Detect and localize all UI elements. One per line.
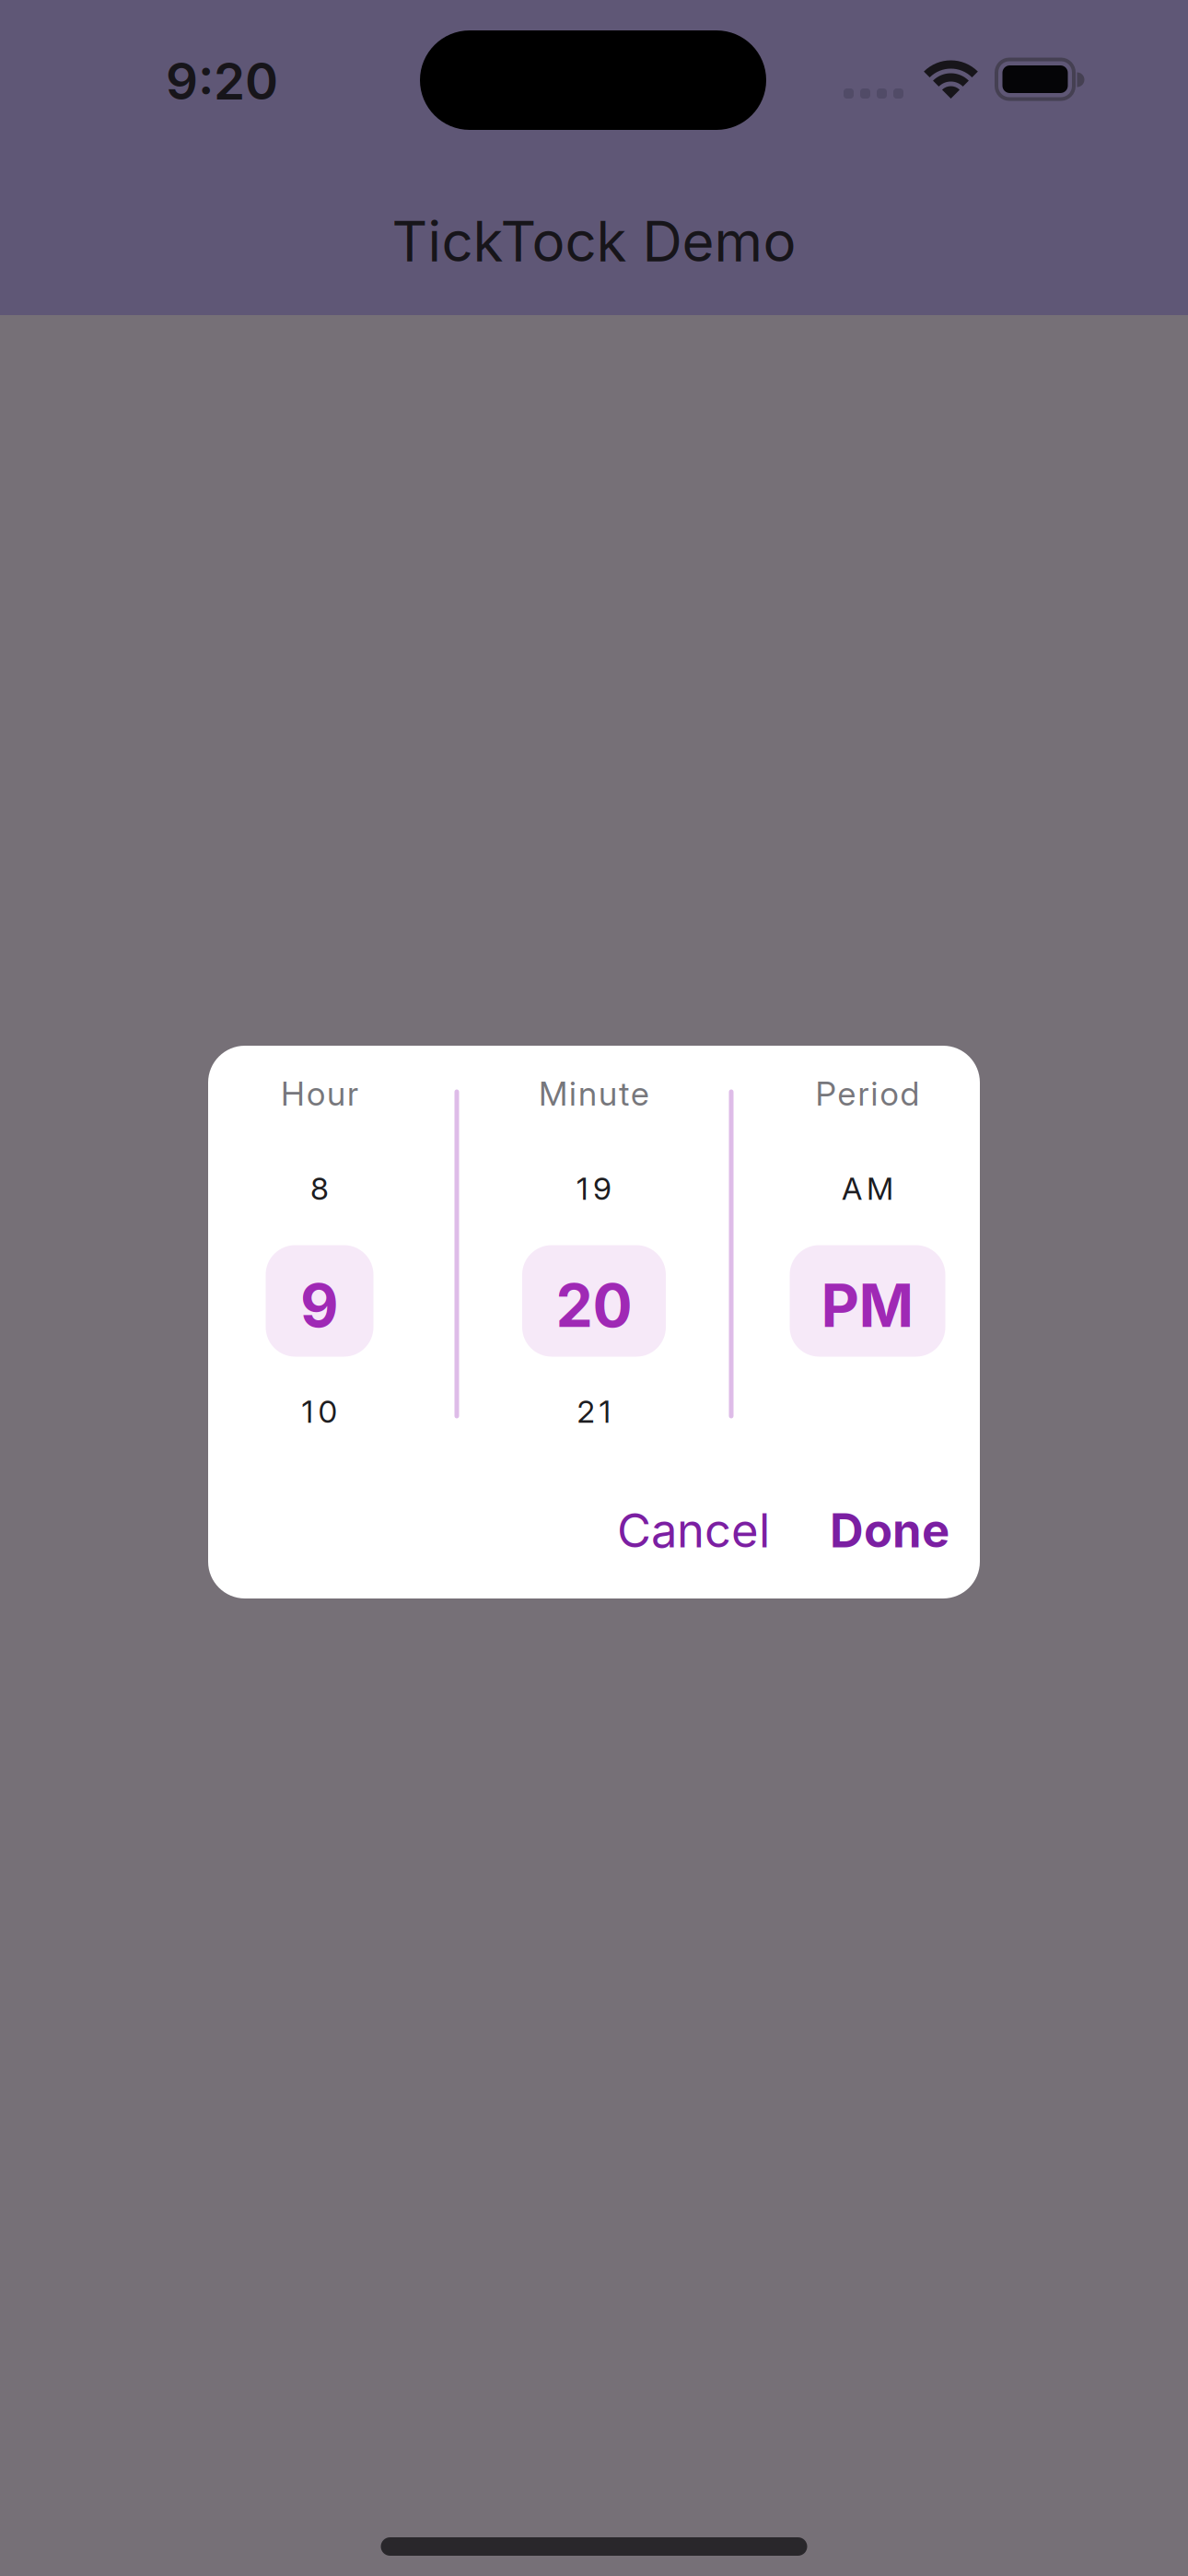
button[interactable]: Done	[770, 1484, 1009, 1576]
staticText: TickTock Demo	[392, 209, 796, 274]
button[interactable]: 20	[522, 1245, 666, 1357]
staticText: PM	[821, 1271, 914, 1340]
button[interactable]: 1 0	[238, 1375, 401, 1448]
staticText: 20	[556, 1271, 632, 1340]
button[interactable]: A M	[762, 1152, 973, 1225]
button[interactable]: 1 9	[495, 1152, 693, 1225]
staticText: 9:20	[166, 51, 278, 111]
staticText: A M	[842, 1170, 893, 1207]
button[interactable]: 8	[238, 1152, 401, 1225]
staticText: Done	[830, 1503, 949, 1558]
staticText: 2 1	[577, 1393, 611, 1430]
button[interactable]: PM	[790, 1245, 945, 1357]
button[interactable]: 2 1	[495, 1375, 693, 1448]
button[interactable]: Cancel	[546, 1484, 841, 1576]
button[interactable]: 9	[266, 1245, 373, 1357]
staticText: 8	[310, 1170, 329, 1207]
staticText: H o u r	[281, 1074, 358, 1113]
staticText: M i n u t e	[539, 1074, 649, 1113]
staticText: Cancel	[617, 1503, 770, 1558]
staticText: 9	[300, 1271, 339, 1340]
staticText: 1 9	[577, 1170, 611, 1207]
staticText: 1 0	[302, 1393, 338, 1430]
staticText: P e r i o d	[815, 1074, 920, 1113]
